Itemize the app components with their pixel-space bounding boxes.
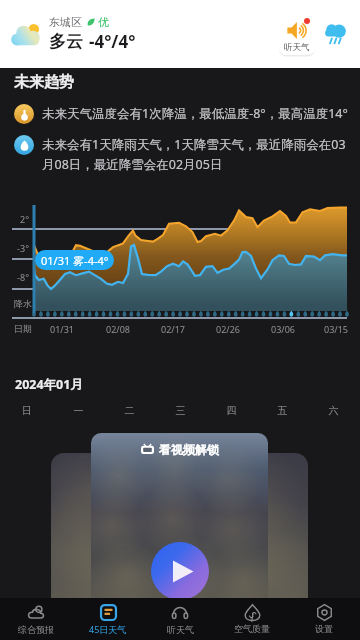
staticText: 空气质量 <box>234 623 270 634</box>
staticText: 未来会有1天降雨天气，1天降雪天气，最近降雨会在03月08日，最近降雪会在02月… <box>42 136 355 173</box>
staticText: 东城区 <box>49 15 82 29</box>
staticText: 01/31 雾-4-4° <box>41 253 109 268</box>
staticText: 日 <box>1 404 53 417</box>
staticText: 02/17 <box>157 323 189 335</box>
staticText: 综合预报 <box>18 624 54 635</box>
staticText: 六 <box>308 404 359 417</box>
staticText: 02/08 <box>102 323 134 335</box>
button[interactable]: 空气质量 <box>216 598 288 640</box>
staticText: -8° <box>0 271 29 283</box>
staticText: 03/06 <box>267 323 299 335</box>
staticText: 未来趋势 <box>14 73 74 92</box>
button[interactable]: 听天气 <box>279 14 315 55</box>
staticText: 听天气 <box>284 42 310 53</box>
button[interactable]: 听天气 <box>144 598 216 640</box>
button[interactable]: Play video <box>151 542 209 600</box>
staticText: -4°/4° <box>89 30 136 53</box>
staticText: 03/15 <box>320 323 352 335</box>
staticText: 优 <box>98 15 109 29</box>
button[interactable] <box>91 433 268 598</box>
staticText: 四 <box>206 404 257 417</box>
staticText: 多云 <box>49 31 83 52</box>
button[interactable] <box>51 453 308 598</box>
button[interactable]: 45日天气 <box>72 598 144 640</box>
staticText: 降水 <box>0 298 32 309</box>
staticText: 02/26 <box>212 323 244 335</box>
staticText: 2024年01月 <box>15 376 83 393</box>
staticText: 二 <box>104 404 155 417</box>
button[interactable]: 设置 <box>288 598 360 640</box>
staticText: 五 <box>257 404 308 417</box>
staticText: 日期 <box>0 323 32 334</box>
staticText: 三 <box>155 404 206 417</box>
staticText: -3° <box>0 242 29 254</box>
staticText: 设置 <box>315 623 333 634</box>
staticText: 45日天气 <box>89 623 127 635</box>
staticText: 2° <box>0 213 29 225</box>
staticText: 听天气 <box>167 624 194 635</box>
staticText: 一 <box>53 404 104 417</box>
other: Rain forecast <box>322 21 348 47</box>
staticText: 未来天气温度会有1次降温，最低温度-8°，最高温度14° <box>42 105 348 122</box>
button[interactable]: 综合预报 <box>0 598 72 640</box>
staticText: 01/31 <box>46 323 78 335</box>
staticText: 看视频解锁 <box>159 442 219 457</box>
